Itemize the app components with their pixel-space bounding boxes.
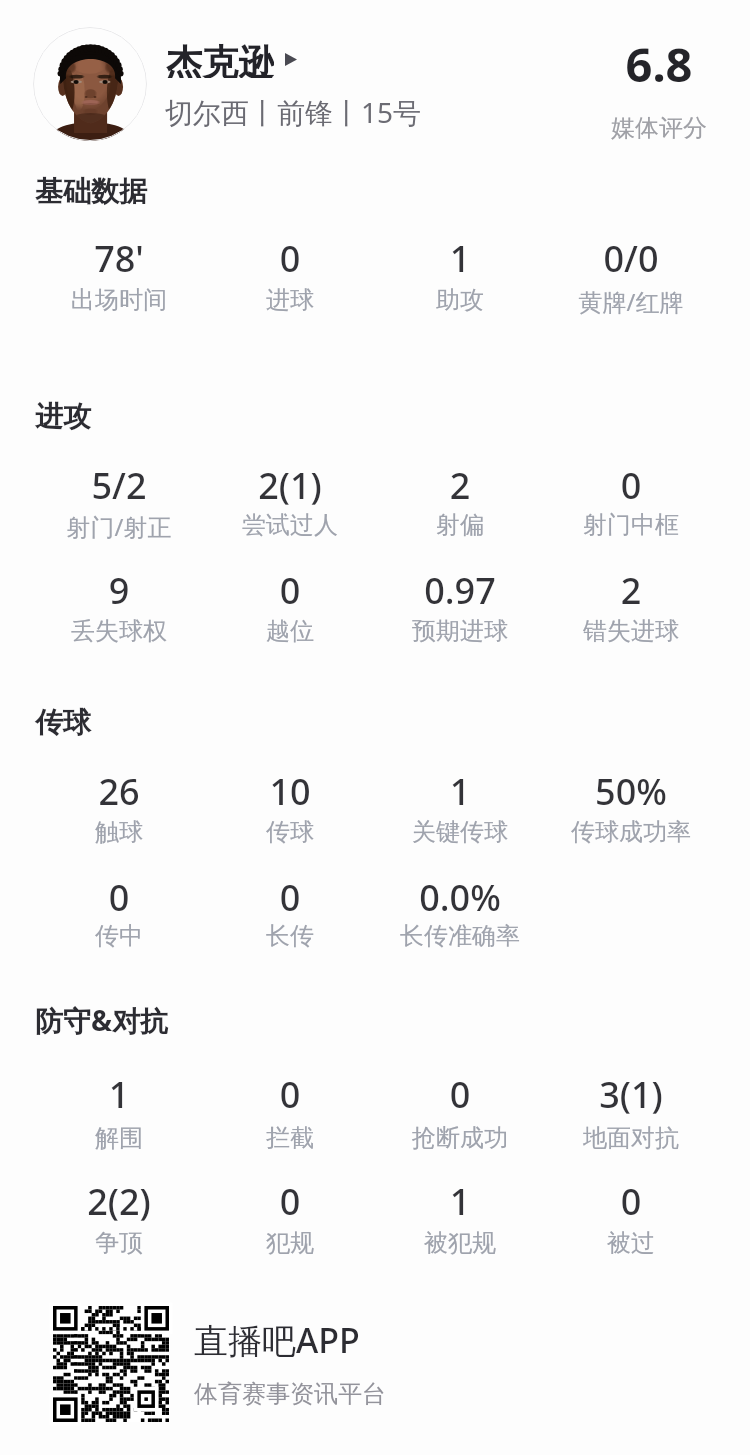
staticText: 传球成功率 [546, 817, 716, 847]
staticText: 出场时间 [34, 285, 204, 315]
staticText: 2 [546, 566, 716, 615]
staticText: 错失进球 [546, 616, 716, 646]
button[interactable]: 50% [546, 761, 716, 847]
button[interactable]: 3(1) [546, 1064, 716, 1153]
staticText: 拦截 [205, 1123, 375, 1153]
button[interactable]: 2 [546, 560, 716, 646]
button[interactable]: 1 [34, 1064, 204, 1153]
staticText: 犯规 [205, 1228, 375, 1258]
staticText: 被犯规 [375, 1228, 545, 1258]
staticText: 尝试过人 [205, 510, 375, 540]
staticText: 基础数据 [35, 174, 635, 209]
staticText: 0 [205, 873, 375, 922]
button[interactable]: 26 [34, 761, 204, 847]
staticText: 26 [34, 767, 204, 816]
staticText: 争顶 [34, 1228, 204, 1258]
button[interactable]: 1 [375, 228, 545, 315]
staticText: 0 [546, 461, 716, 510]
staticText: 10 [205, 767, 375, 816]
button[interactable]: 0.0% [375, 867, 545, 951]
staticText: 切尔西丨前锋丨15号 [165, 93, 750, 131]
button[interactable]: Scan QR code to get the app [45, 1298, 405, 1430]
staticText: 1 [34, 1070, 204, 1119]
button[interactable]: 6.8 [568, 36, 750, 146]
button[interactable]: 2 [375, 455, 545, 540]
staticText: 地面对抗 [546, 1123, 716, 1153]
button[interactable]: 0 [375, 1064, 545, 1153]
staticText: 助攻 [375, 285, 545, 315]
staticText: 0/0 [546, 234, 716, 283]
staticText: 0 [205, 1177, 375, 1226]
button[interactable]: 2(2) [34, 1171, 204, 1258]
staticText: 0 [34, 873, 204, 922]
staticText: 1 [375, 767, 545, 816]
button[interactable]: 0 [205, 867, 375, 951]
staticText: 9 [34, 566, 204, 615]
button[interactable]: 78' [34, 228, 204, 315]
staticText: 3(1) [546, 1070, 716, 1119]
staticText: 射门中框 [546, 510, 716, 540]
button[interactable]: 1 [375, 761, 545, 847]
staticText: 1 [375, 234, 545, 283]
button[interactable]: 0 [546, 1171, 716, 1258]
staticText: 杰克逊 [166, 40, 274, 78]
button[interactable]: 0/0 [546, 228, 716, 315]
staticText: 2(2) [34, 1177, 204, 1226]
staticText: 进球 [205, 285, 375, 315]
staticText: 78' [34, 234, 204, 283]
button[interactable]: 0 [34, 867, 204, 951]
staticText: 射偏 [375, 510, 545, 540]
staticText: 触球 [34, 817, 204, 847]
staticText: 进攻 [35, 399, 635, 434]
button[interactable]: 0 [205, 560, 375, 646]
button[interactable]: 杰克逊 [164, 40, 302, 78]
staticText: 6.8 [568, 32, 750, 96]
staticText: 2 [375, 461, 545, 510]
staticText: 越位 [205, 616, 375, 646]
staticText: 射门/射正 [34, 510, 204, 543]
staticText: 关键传球 [375, 817, 545, 847]
button[interactable]: Player photo [33, 27, 147, 141]
button[interactable]: 1 [375, 1171, 545, 1258]
button[interactable]: 9 [34, 560, 204, 646]
staticText: 0 [205, 1070, 375, 1119]
other: Open player profile [285, 53, 297, 66]
staticText: 长传准确率 [375, 921, 545, 951]
staticText: 被过 [546, 1228, 716, 1258]
staticText: 丢失球权 [34, 616, 204, 646]
staticText: 传中 [34, 921, 204, 951]
staticText: 黄牌/红牌 [546, 285, 716, 318]
button[interactable]: 0 [205, 1064, 375, 1153]
staticText: 0 [375, 1070, 545, 1119]
button[interactable]: 0.97 [375, 560, 545, 646]
staticText: 传球 [35, 705, 635, 740]
staticText: 2(1) [205, 461, 375, 510]
staticText: 5/2 [34, 461, 204, 510]
staticText: 传球 [205, 817, 375, 847]
staticText: 1 [375, 1177, 545, 1226]
staticText: 0.0% [375, 873, 545, 922]
staticText: 0 [546, 1177, 716, 1226]
button[interactable]: 0 [205, 1171, 375, 1258]
staticText: 媒体评分 [568, 113, 750, 143]
staticText: 0 [205, 566, 375, 615]
staticText: 长传 [205, 921, 375, 951]
staticText: 防守&对抗 [35, 1001, 635, 1039]
staticText: 直播吧APP [194, 1317, 360, 1363]
button[interactable]: 0 [205, 228, 375, 315]
button[interactable]: 2(1) [205, 455, 375, 540]
button[interactable]: 0 [546, 455, 716, 540]
staticText: 解围 [34, 1123, 204, 1153]
staticText: 预期进球 [375, 616, 545, 646]
staticText: 50% [546, 767, 716, 816]
staticText: 抢断成功 [375, 1123, 545, 1153]
staticText: 体育赛事资讯平台 [194, 1379, 386, 1409]
button[interactable]: 5/2 [34, 455, 204, 540]
button[interactable]: 10 [205, 761, 375, 847]
other: Scan QR code to get the app [53, 1306, 169, 1422]
staticText: 0.97 [375, 566, 545, 615]
staticText: 0 [205, 234, 375, 283]
